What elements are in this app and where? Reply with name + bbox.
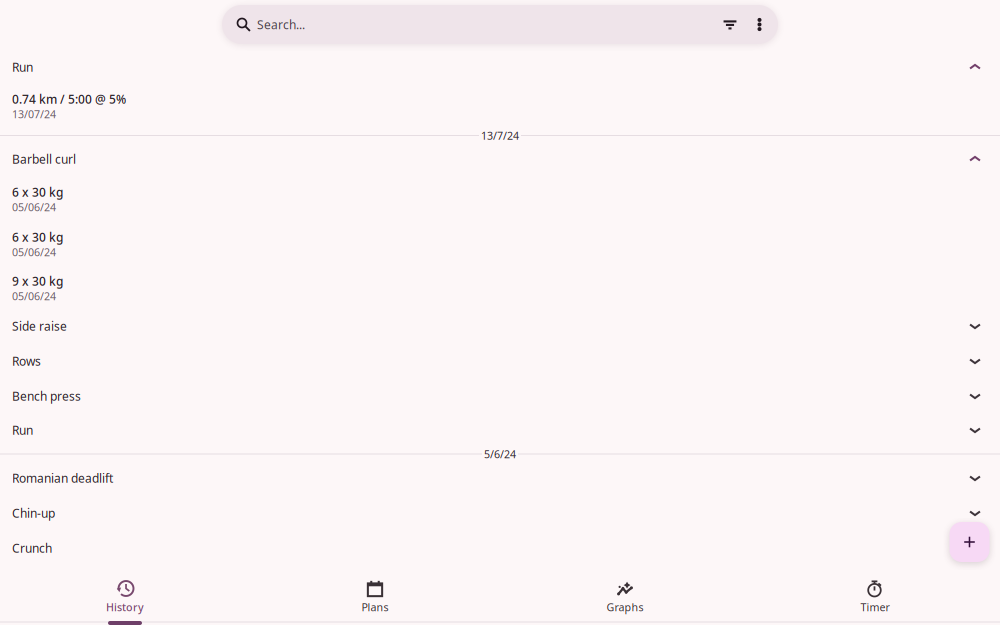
button[interactable]: 6 x 30 kg (0, 229, 1000, 259)
button[interactable]: Rows (0, 344, 1000, 378)
staticText: History (106, 600, 144, 614)
button[interactable]: Crunch (0, 531, 1000, 565)
staticText: 05/06/24 (12, 245, 56, 259)
staticText: 6 x 30 kg (12, 229, 63, 245)
staticText: Run (12, 422, 33, 438)
staticText: 9 x 30 kg (12, 273, 63, 289)
staticText: Romanian deadlift (12, 470, 113, 486)
button[interactable]: Chin-up (0, 496, 1000, 530)
staticText: Bench press (12, 388, 81, 404)
staticText: Graphs (606, 600, 643, 614)
button[interactable]: History (0, 570, 250, 625)
button[interactable]: Side raise (0, 309, 1000, 343)
staticText: 13/7/24 (481, 128, 519, 143)
staticText: 05/06/24 (12, 289, 56, 303)
staticText: 13/07/24 (12, 107, 56, 121)
button[interactable]: Add workout (949, 522, 989, 562)
button[interactable]: 9 x 30 kg (0, 273, 1000, 303)
button[interactable]: Romanian deadlift (0, 461, 1000, 495)
staticText: Barbell curl (12, 151, 76, 167)
staticText: Side raise (12, 318, 67, 334)
button[interactable]: 6 x 30 kg (0, 184, 1000, 214)
staticText: Run (12, 59, 33, 75)
button[interactable]: Timer (750, 570, 1000, 625)
button[interactable]: Run (0, 50, 1000, 84)
button[interactable]: Graphs (500, 570, 750, 625)
staticText: Timer (860, 600, 889, 614)
staticText: 6 x 30 kg (12, 184, 63, 200)
button[interactable]: Bench press (0, 379, 1000, 413)
button[interactable]: 0.74 km / 5:00 @ 5% (0, 91, 1000, 121)
button[interactable]: Barbell curl (0, 142, 1000, 176)
staticText: Crunch (12, 540, 52, 556)
button[interactable]: Run (0, 413, 1000, 447)
button[interactable]: Search... (222, 5, 778, 44)
staticText: 05/06/24 (12, 200, 56, 214)
staticText: Plans (361, 600, 388, 614)
button[interactable]: Plans (250, 570, 500, 625)
staticText: Rows (12, 353, 41, 369)
staticText: Chin-up (12, 505, 55, 521)
staticText: 5/6/24 (484, 447, 516, 461)
staticText: Search... (257, 16, 305, 32)
staticText: 0.74 km / 5:00 @ 5% (12, 91, 126, 107)
